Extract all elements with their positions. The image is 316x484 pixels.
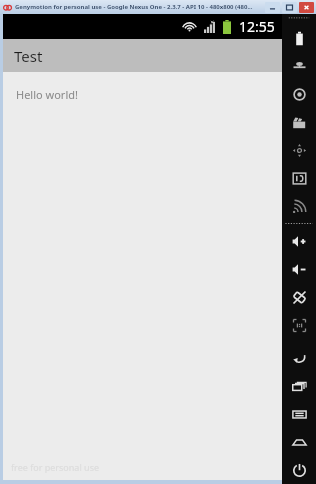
button[interactable]: Volume up (282, 227, 316, 255)
button[interactable]: Back (282, 344, 316, 372)
button[interactable]: Accelerometer (282, 136, 316, 164)
button[interactable]: Close (299, 2, 314, 13)
staticText: 12:55 (239, 17, 275, 36)
button[interactable]: GPS (282, 52, 316, 80)
button[interactable]: Camera (282, 80, 316, 108)
staticText: Hello world! (16, 87, 78, 102)
button[interactable]: Menu (282, 400, 316, 428)
button[interactable]: Identifiers (282, 164, 316, 192)
button[interactable]: Minimize (265, 2, 280, 13)
button[interactable]: Home (282, 428, 316, 456)
button[interactable]: Power (282, 456, 316, 484)
staticText: Genymotion for personal use - Google Nex… (15, 3, 253, 11)
staticText: Test (14, 46, 43, 66)
button[interactable]: Recent apps (282, 372, 316, 400)
button[interactable]: Maximize (282, 2, 297, 13)
staticText: free for personal use (11, 461, 100, 473)
button[interactable]: Video recording (282, 108, 316, 136)
button[interactable]: Rotate screen (282, 283, 316, 311)
button[interactable]: Test (3, 39, 282, 72)
button[interactable]: Network (282, 192, 316, 220)
button[interactable]: Battery (282, 24, 316, 52)
button[interactable]: Actual size (282, 311, 316, 339)
button[interactable]: Volume down (282, 255, 316, 283)
